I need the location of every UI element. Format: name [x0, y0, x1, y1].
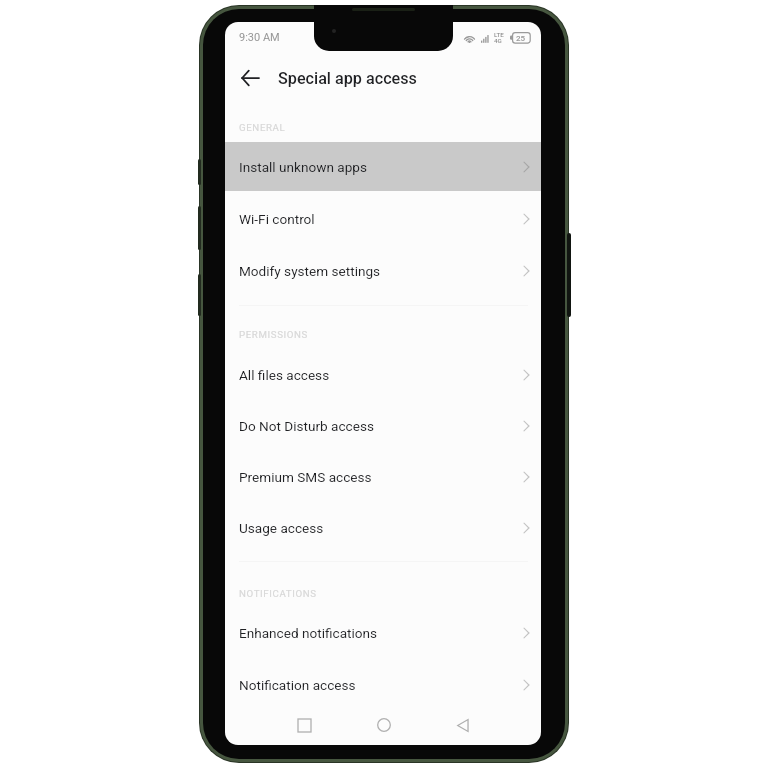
staticText: Notification access: [239, 677, 356, 693]
button[interactable]: Notification access: [225, 659, 541, 710]
button[interactable]: Home: [358, 705, 410, 745]
button[interactable]: Install unknown apps: [225, 142, 541, 191]
button[interactable]: Do Not Disturb access: [225, 400, 541, 451]
staticText: Usage access: [239, 520, 324, 536]
button[interactable]: Back: [437, 705, 489, 745]
staticText: 25: [516, 34, 526, 43]
staticText: Special app access: [278, 69, 417, 88]
button[interactable]: Usage access: [225, 502, 541, 553]
button[interactable]: Recent apps: [278, 705, 330, 745]
staticText: Enhanced notifications: [239, 625, 378, 641]
staticText: Premium SMS access: [239, 469, 372, 485]
button[interactable]: Modify system settings: [225, 245, 541, 296]
staticText: All files access: [239, 367, 330, 383]
staticText: 4G: [494, 37, 502, 44]
button[interactable]: Premium SMS access: [225, 451, 541, 502]
staticText: GENERAL: [239, 122, 286, 133]
button[interactable]: Wi-Fi control: [225, 193, 541, 244]
staticText: 9:30 AM: [239, 31, 280, 44]
staticText: Do Not Disturb access: [239, 418, 374, 434]
button[interactable]: All files access: [225, 349, 541, 400]
staticText: Wi-Fi control: [239, 211, 315, 227]
button[interactable]: Enhanced notifications: [225, 607, 541, 658]
staticText: PERMISSIONS: [239, 329, 308, 340]
button[interactable]: Back: [233, 62, 267, 94]
staticText: Install unknown apps: [239, 159, 367, 175]
staticText: Modify system settings: [239, 263, 381, 279]
staticText: LTE: [494, 31, 504, 38]
staticText: NOTIFICATIONS: [239, 588, 317, 599]
